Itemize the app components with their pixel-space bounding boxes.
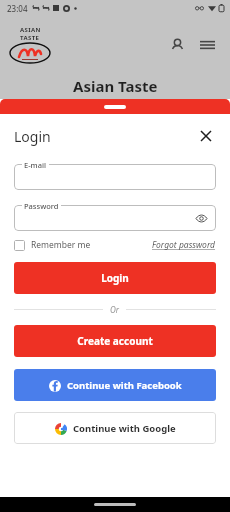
staticText: Continue with Google [73, 422, 176, 435]
button[interactable]: Show password [194, 211, 208, 225]
staticText: Continue with Facebook [67, 379, 182, 392]
button[interactable]: Remember me [14, 239, 91, 251]
button[interactable] [14, 205, 216, 231]
button[interactable] [14, 164, 216, 190]
button[interactable]: Account [164, 32, 190, 58]
button[interactable]: Forgot password [152, 239, 216, 251]
staticText: E-mail [24, 160, 47, 170]
staticText: TASTE [20, 34, 40, 42]
button[interactable]: Create account [14, 325, 216, 357]
button[interactable]: Login [14, 262, 216, 294]
button[interactable]: Continue with Google [14, 412, 216, 444]
staticText: Login [101, 271, 129, 285]
staticText: Password [24, 201, 59, 211]
staticText: 23:04 [7, 3, 28, 14]
button[interactable]: Menu [194, 32, 220, 58]
staticText: ASIAN [20, 26, 41, 34]
staticText: Forgot password [152, 239, 216, 251]
staticText: Remember me [31, 239, 91, 251]
staticText: Or [110, 304, 119, 315]
staticText: Asian Taste [73, 76, 158, 96]
button[interactable]: Close [196, 126, 216, 146]
staticText: Login [14, 127, 51, 146]
button[interactable]: Continue with Facebook [14, 369, 216, 401]
staticText: Create account [77, 334, 153, 348]
